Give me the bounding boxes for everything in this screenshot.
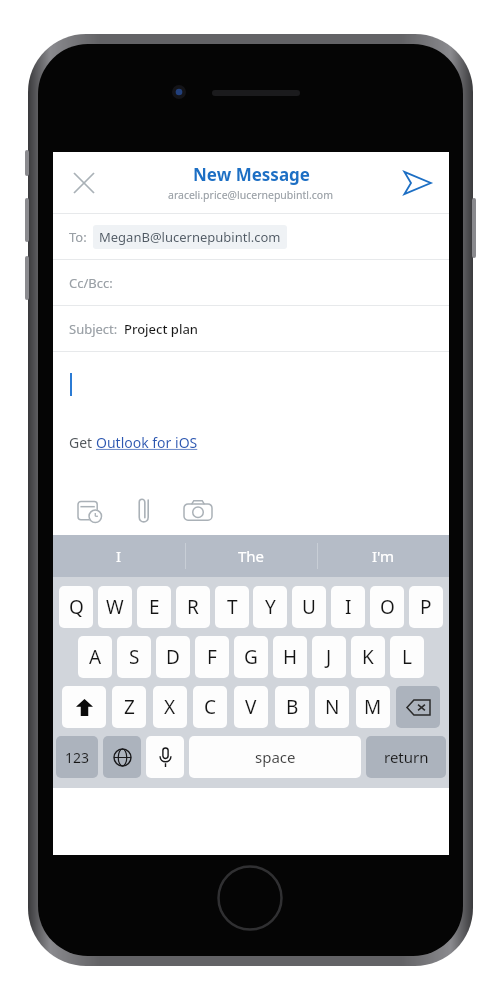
- staticText: Cc/Bcc:: [69, 274, 113, 292]
- staticText: R: [187, 594, 199, 620]
- staticText: New Message: [193, 163, 310, 186]
- button[interactable]: I'm: [318, 535, 449, 577]
- button[interactable]: T: [215, 586, 249, 628]
- button[interactable]: C: [193, 686, 227, 728]
- button[interactable]: Camera: [179, 492, 217, 530]
- button[interactable]: Change keyboard: [103, 736, 141, 778]
- button[interactable]: Schedule send: [71, 492, 109, 530]
- staticText: Z: [124, 694, 135, 720]
- button[interactable]: B: [275, 686, 309, 728]
- staticText: A: [89, 644, 102, 670]
- button[interactable]: Close: [63, 162, 105, 204]
- staticText: 123: [65, 748, 90, 767]
- button[interactable]: Dictate: [146, 736, 184, 778]
- staticText: Q: [69, 594, 84, 620]
- button[interactable]: A: [78, 636, 112, 678]
- staticText: MeganB@lucernepubintl.com: [99, 228, 281, 246]
- button[interactable]: K: [351, 636, 385, 678]
- staticText: Project plan: [124, 320, 198, 338]
- button[interactable]: X: [153, 686, 187, 728]
- staticText: O: [380, 594, 395, 620]
- staticText: The: [238, 546, 265, 566]
- staticText: H: [283, 644, 298, 670]
- staticText: I'm: [372, 546, 395, 566]
- button[interactable]: G: [234, 636, 268, 678]
- staticText: I: [345, 594, 352, 620]
- button[interactable]: M: [356, 686, 390, 728]
- staticText: L: [402, 644, 412, 670]
- button[interactable]: Z: [112, 686, 146, 728]
- button[interactable]: O: [370, 586, 404, 628]
- button[interactable]: Backspace: [396, 686, 440, 728]
- staticText: P: [420, 594, 432, 620]
- staticText: space: [255, 747, 296, 767]
- button[interactable]: Attach file: [125, 492, 163, 530]
- staticText: D: [166, 644, 180, 670]
- button[interactable]: N: [315, 686, 349, 728]
- button[interactable]: V: [234, 686, 268, 728]
- button[interactable]: space: [189, 736, 361, 778]
- staticText: X: [164, 694, 176, 720]
- button[interactable]: D: [156, 636, 190, 678]
- staticText: C: [204, 694, 217, 720]
- button[interactable]: Send: [395, 161, 439, 205]
- button[interactable]: S: [117, 636, 151, 678]
- button[interactable]: Outlook for iOS: [96, 433, 198, 452]
- staticText: S: [129, 644, 140, 670]
- staticText: G: [244, 644, 258, 670]
- staticText: B: [286, 694, 299, 720]
- button[interactable]: R: [176, 586, 210, 628]
- staticText: N: [325, 694, 340, 720]
- button[interactable]: return: [366, 736, 446, 778]
- button[interactable]: Shift: [62, 686, 106, 728]
- button[interactable]: U: [292, 586, 326, 628]
- staticText: F: [207, 644, 217, 670]
- staticText: M: [364, 694, 382, 720]
- button[interactable]: To:: [53, 214, 449, 259]
- button[interactable]: I: [53, 535, 185, 577]
- staticText: T: [227, 594, 238, 620]
- button[interactable]: 123: [56, 736, 98, 778]
- button[interactable]: The: [186, 535, 317, 577]
- button[interactable]: J: [312, 636, 346, 678]
- staticText: To:: [69, 228, 87, 246]
- staticText: I: [116, 546, 122, 566]
- staticText: Get: [69, 433, 96, 452]
- staticText: araceli.price@lucernepubintl.com: [168, 188, 334, 202]
- button[interactable]: I: [331, 586, 365, 628]
- staticText: Subject:: [69, 320, 118, 338]
- staticText: E: [149, 594, 160, 620]
- button[interactable]: Subject:: [53, 306, 449, 351]
- button[interactable]: H: [273, 636, 307, 678]
- button[interactable]: P: [409, 586, 443, 628]
- button[interactable]: E: [137, 586, 171, 628]
- staticText: J: [326, 644, 332, 670]
- staticText: Y: [265, 594, 276, 620]
- staticText: V: [245, 694, 257, 720]
- button[interactable]: W: [98, 586, 132, 628]
- button[interactable]: F: [195, 636, 229, 678]
- button[interactable]: Cc/Bcc:: [53, 260, 449, 305]
- button[interactable]: Y: [253, 586, 287, 628]
- staticText: W: [106, 594, 124, 620]
- button[interactable]: L: [390, 636, 424, 678]
- staticText: K: [362, 644, 374, 670]
- staticText: U: [302, 594, 316, 620]
- staticText: return: [384, 747, 429, 767]
- button[interactable]: Get: [53, 352, 449, 487]
- button[interactable]: Q: [59, 586, 93, 628]
